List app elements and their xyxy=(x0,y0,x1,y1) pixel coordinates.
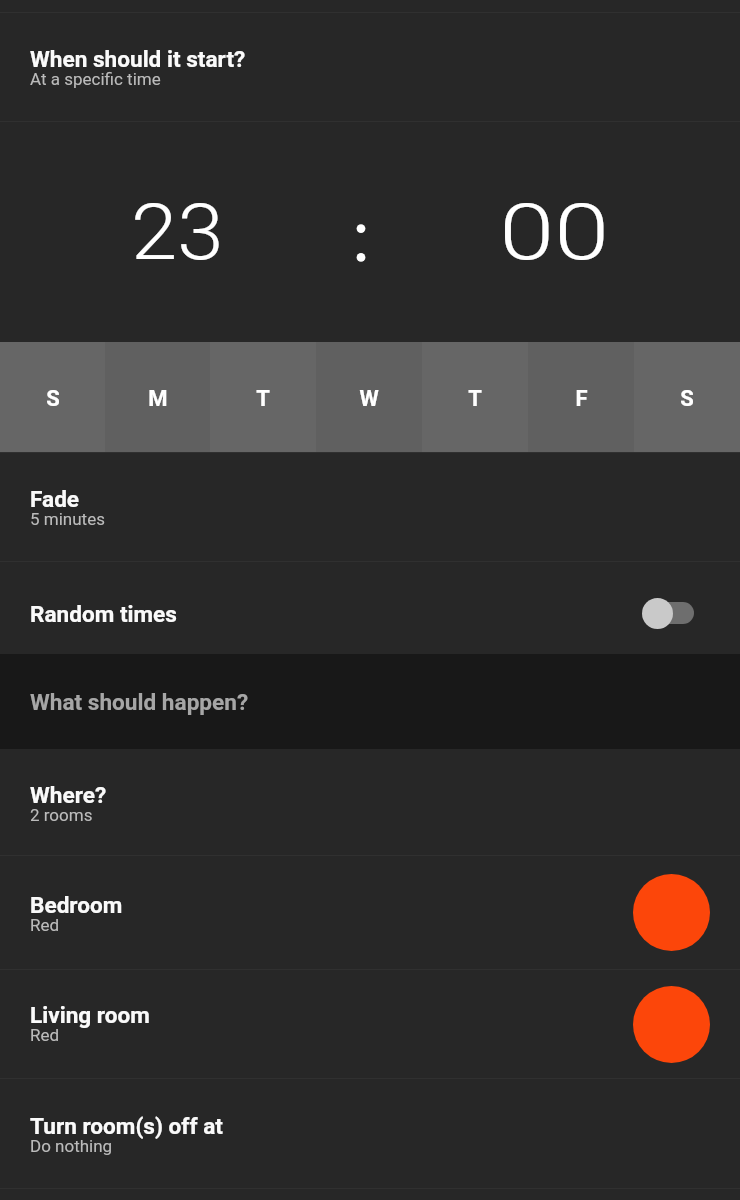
staticText: S xyxy=(680,386,694,412)
button[interactable]: Where? xyxy=(0,749,740,855)
staticText: Red xyxy=(30,915,60,935)
button[interactable]: T xyxy=(422,342,528,452)
staticText: Bedroom xyxy=(30,892,123,918)
button[interactable]: W xyxy=(316,342,422,452)
staticText: Do nothing xyxy=(30,1136,113,1156)
staticText: Where? xyxy=(30,782,107,808)
staticText: F xyxy=(575,386,588,412)
button[interactable]: Bedroom xyxy=(0,856,740,969)
staticText: T xyxy=(468,386,482,412)
staticText: T xyxy=(256,386,270,412)
button[interactable]: S xyxy=(0,342,105,452)
button[interactable]: S xyxy=(634,342,740,452)
button[interactable]: Fade xyxy=(0,453,740,561)
button[interactable]: Random times xyxy=(0,562,740,654)
button[interactable]: Bedroom colour red xyxy=(633,874,710,951)
staticText: Living room xyxy=(30,1002,150,1028)
button[interactable]: Living room xyxy=(0,970,740,1078)
staticText: 5 minutes xyxy=(30,509,105,529)
staticText: W xyxy=(359,386,379,412)
staticText: When should it start? xyxy=(30,46,246,72)
staticText: At a specific time xyxy=(30,69,161,89)
staticText: 00 xyxy=(499,187,610,278)
staticText: S xyxy=(46,386,60,412)
button[interactable]: What should happen? xyxy=(0,654,740,749)
button[interactable]: T xyxy=(210,342,316,452)
button[interactable]: Living room colour red xyxy=(633,986,710,1063)
staticText: Random times xyxy=(30,601,177,627)
staticText: What should happen? xyxy=(30,689,249,715)
staticText: Fade xyxy=(30,486,80,512)
button[interactable]: M xyxy=(105,342,210,452)
button[interactable]: When should it start? xyxy=(0,13,740,121)
button[interactable]: Set minutes, 00 xyxy=(369,122,740,342)
staticText: M xyxy=(148,386,168,412)
staticText: 23 xyxy=(131,187,224,278)
staticText: Turn room(s) off at xyxy=(30,1113,223,1139)
button[interactable]: Turn room(s) off at xyxy=(0,1079,740,1188)
staticText: Red xyxy=(30,1025,60,1045)
button[interactable]: Random times toggle, off xyxy=(642,596,694,630)
staticText: 2 rooms xyxy=(30,805,93,825)
button[interactable]: Set hours, 23 xyxy=(0,122,354,342)
button[interactable]: F xyxy=(528,342,634,452)
